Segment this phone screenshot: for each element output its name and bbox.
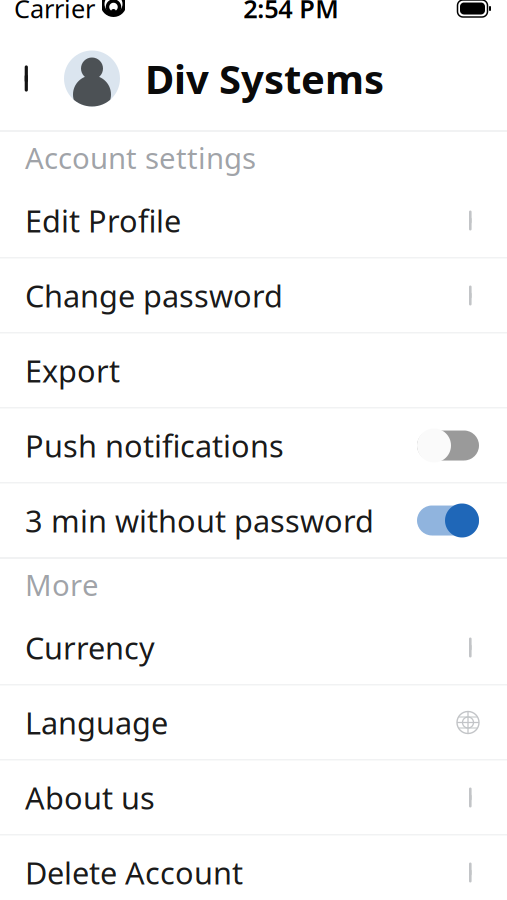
button[interactable]: Push notifications bbox=[0, 408, 507, 482]
staticText: Currency bbox=[25, 627, 155, 668]
staticText: Push notifications bbox=[25, 425, 284, 466]
staticText: Carrier bbox=[14, 0, 95, 25]
staticText: 3 min without password bbox=[25, 500, 374, 541]
staticText: 2:54 PM bbox=[243, 0, 339, 25]
staticText: More bbox=[25, 565, 99, 604]
button[interactable]: Edit Profile bbox=[0, 183, 507, 257]
staticText: Export bbox=[25, 350, 120, 391]
button[interactable]: Change password bbox=[0, 258, 507, 332]
button[interactable]: 3 min without password bbox=[0, 483, 507, 557]
staticText: Account settings bbox=[25, 138, 256, 177]
staticText: About us bbox=[25, 777, 155, 818]
button[interactable]: Delete Account bbox=[0, 835, 507, 900]
button[interactable]: Export bbox=[0, 333, 507, 407]
button[interactable]: About us bbox=[0, 760, 507, 834]
staticText: Edit Profile bbox=[25, 200, 181, 241]
staticText: Change password bbox=[25, 275, 283, 316]
staticText: Delete Account bbox=[25, 852, 243, 893]
staticText: Language bbox=[25, 702, 168, 743]
button[interactable]: Language bbox=[0, 685, 507, 759]
button[interactable]: Back bbox=[6, 51, 52, 105]
staticText: Div Systems bbox=[145, 52, 384, 105]
button[interactable]: Currency bbox=[0, 610, 507, 684]
